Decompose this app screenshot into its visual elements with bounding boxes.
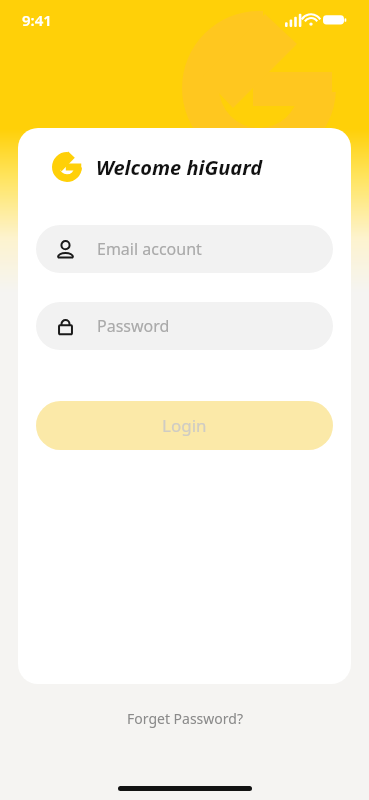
staticText: 9:41 <box>22 10 52 30</box>
staticText: Welcome hiGuard <box>96 154 263 181</box>
button[interactable]: Login <box>36 401 333 450</box>
staticText: Forget Password? <box>127 709 243 728</box>
staticText: Password <box>97 315 170 337</box>
button[interactable]: Forget Password? <box>117 704 253 733</box>
other: Password <box>56 317 75 336</box>
staticText: Email account <box>97 238 202 260</box>
button[interactable]: Account <box>36 225 333 273</box>
staticText: Login <box>162 414 207 437</box>
other: Account <box>56 240 75 259</box>
button[interactable]: Password <box>36 302 333 350</box>
